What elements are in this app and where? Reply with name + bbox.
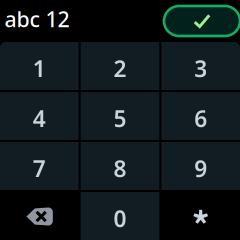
button[interactable]: 9 [161, 142, 240, 190]
staticText: 5 [113, 103, 126, 133]
staticText: 7 [33, 153, 46, 183]
staticText: 9 [194, 153, 207, 183]
staticText: 6 [194, 103, 207, 133]
button[interactable]: 7 [0, 142, 79, 190]
staticText: 1 [33, 53, 46, 83]
button[interactable]: 1 [0, 42, 79, 90]
staticText: 0 [113, 203, 126, 233]
button[interactable]: 2 [81, 42, 159, 90]
button[interactable]: 0 [81, 192, 159, 240]
staticText: 8 [113, 153, 126, 183]
button[interactable]: 8 [81, 142, 159, 190]
button[interactable]: 3 [161, 42, 240, 90]
button[interactable]: 4 [0, 92, 79, 140]
staticText: 3 [194, 53, 207, 83]
button[interactable]: Done [164, 6, 240, 36]
staticText: 2 [113, 53, 126, 83]
staticText: 4 [33, 103, 46, 133]
button[interactable]: 6 [161, 92, 240, 140]
button[interactable]: Asterisk [161, 192, 240, 240]
staticText: abc 12 [4, 5, 69, 33]
button[interactable]: Delete [0, 192, 79, 240]
button[interactable]: 5 [81, 92, 159, 140]
